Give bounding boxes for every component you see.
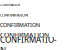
staticText: CONFIRMATION xyxy=(0,34,57,50)
staticText: CONFIRMATION xyxy=(0,3,20,7)
staticText: CONFIRMATION xyxy=(0,31,49,39)
staticText: CONFIRMATION xyxy=(0,12,28,18)
staticText: CONFIRMATION xyxy=(0,21,40,29)
